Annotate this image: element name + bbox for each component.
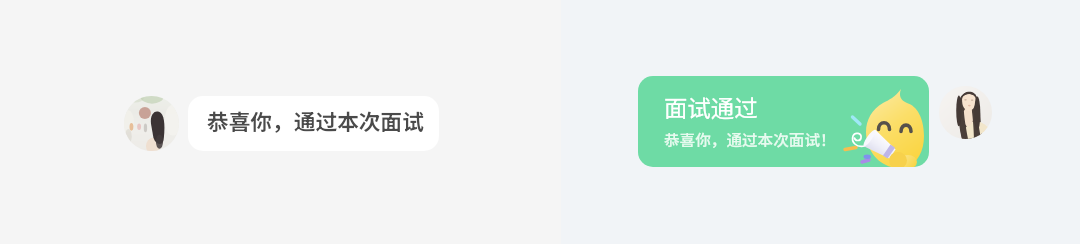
- staticText: 恭喜你，通过本次面试: [207, 105, 424, 136]
- staticText: 恭喜你，通过本次面试！: [664, 128, 836, 151]
- button[interactable]: 面试通过: [638, 76, 929, 167]
- staticText: 面试通过: [664, 90, 758, 124]
- button[interactable]: Avatar: [124, 96, 179, 151]
- button[interactable]: 恭喜你，通过本次面试: [188, 96, 439, 151]
- button[interactable]: Avatar: [939, 86, 992, 139]
